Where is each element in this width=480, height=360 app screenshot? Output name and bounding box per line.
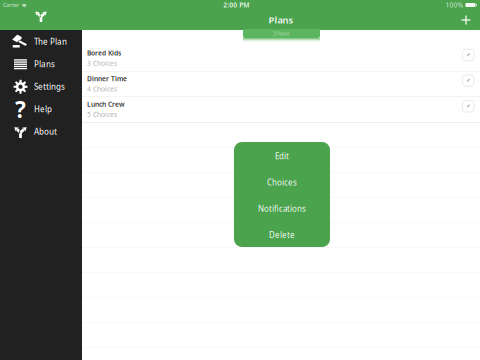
- staticText: Carrier: [3, 1, 19, 9]
- button[interactable]: Plan details: [461, 99, 475, 113]
- staticText: Settings: [34, 81, 65, 92]
- button[interactable]: Edit: [234, 143, 330, 169]
- button[interactable]: ?: [0, 98, 82, 120]
- staticText: 2:00 PM: [223, 1, 249, 9]
- staticText: 100%: [445, 1, 463, 9]
- staticText: Delete: [269, 230, 295, 240]
- staticText: Notifications: [258, 203, 306, 214]
- staticText: 3 Choices: [87, 59, 117, 68]
- button[interactable]: Plans: [0, 53, 82, 75]
- staticText: 4 Choices: [87, 84, 117, 93]
- button[interactable]: Bored Kids: [82, 46, 480, 71]
- staticText: Plans: [268, 14, 293, 26]
- button[interactable]: Plan details: [461, 74, 475, 88]
- button[interactable]: Choices: [234, 169, 330, 195]
- button[interactable]: Lunch Crew: [82, 97, 480, 122]
- staticText: 3 Plans: [273, 30, 290, 37]
- button[interactable]: Delete: [234, 222, 330, 248]
- button[interactable]: Notifications: [234, 195, 330, 222]
- button[interactable]: Plan details: [461, 48, 475, 62]
- staticText: Dinner Time: [87, 74, 127, 83]
- staticText: Bored Kids: [87, 49, 121, 57]
- staticText: 5 Choices: [87, 110, 117, 119]
- button[interactable]: New plan: [456, 10, 476, 30]
- staticText: Help: [34, 104, 52, 114]
- button[interactable]: The Plan: [0, 30, 82, 53]
- staticText: ?: [15, 94, 26, 124]
- staticText: Edit: [275, 151, 289, 161]
- staticText: Choices: [267, 177, 297, 188]
- staticText: About: [34, 126, 57, 137]
- button[interactable]: About: [0, 120, 82, 143]
- staticText: Lunch Crew: [87, 100, 125, 109]
- staticText: The Plan: [34, 36, 67, 47]
- button[interactable]: Dinner Time: [82, 72, 480, 97]
- button[interactable]: Settings: [0, 75, 82, 98]
- staticText: Plans: [34, 59, 55, 69]
